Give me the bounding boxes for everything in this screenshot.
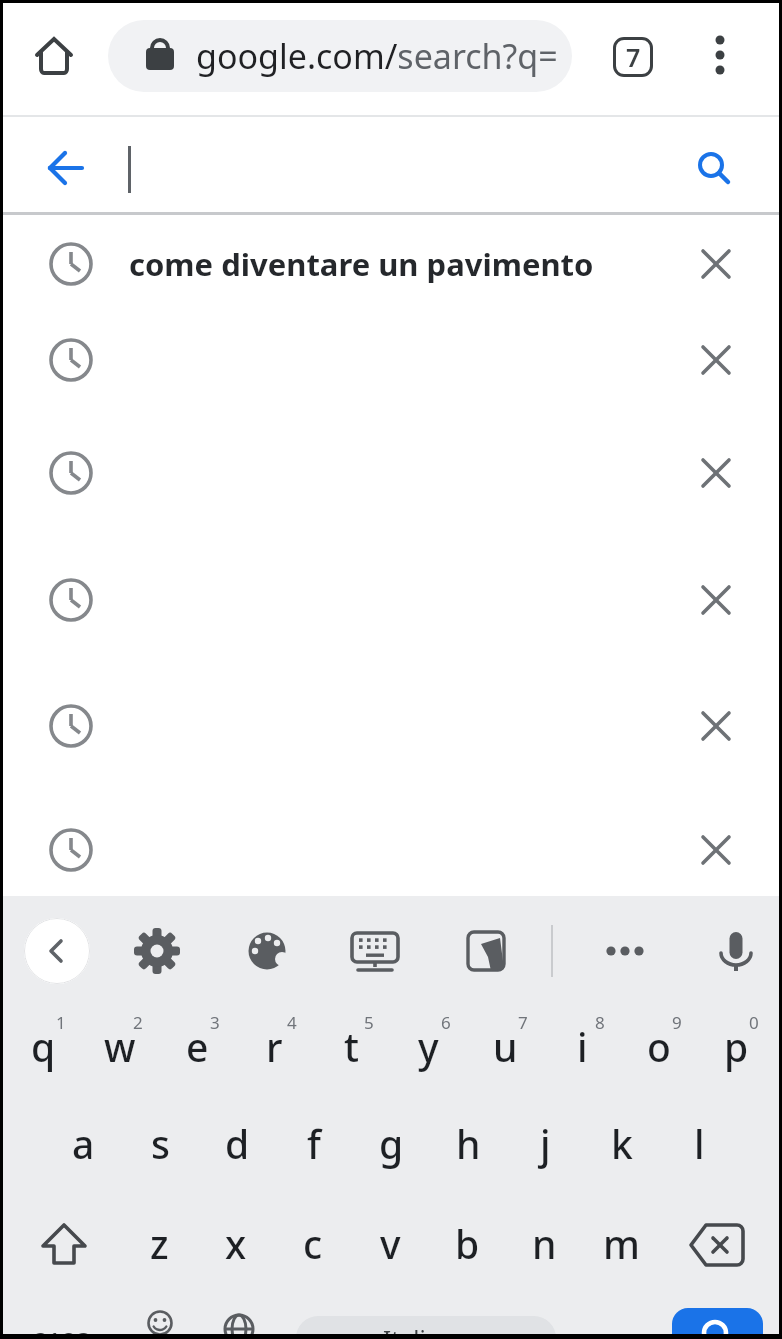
button[interactable]: o	[620, 1010, 698, 1082]
button[interactable]	[347, 923, 403, 979]
staticText: o	[647, 1020, 671, 1073]
button[interactable]: ?123	[20, 1310, 106, 1339]
button[interactable]: w	[81, 1010, 159, 1082]
button[interactable]: x	[197, 1207, 275, 1279]
button[interactable]: u	[466, 1010, 544, 1082]
button[interactable]: l	[660, 1107, 738, 1179]
button[interactable]	[695, 30, 745, 80]
staticText: 3	[210, 1011, 220, 1034]
button[interactable]: y	[389, 1010, 467, 1082]
staticText: j	[540, 1117, 551, 1170]
button[interactable]: s	[121, 1107, 199, 1179]
button[interactable]	[677, 1207, 757, 1283]
staticText: u	[493, 1020, 518, 1073]
button[interactable]	[212, 1300, 266, 1339]
staticText: z	[150, 1217, 169, 1270]
button[interactable]: v	[351, 1207, 429, 1279]
button[interactable]: p	[697, 1010, 775, 1082]
staticText: ?123	[35, 1323, 92, 1339]
button[interactable]	[0, 425, 782, 521]
button[interactable]	[597, 923, 653, 979]
staticText: b	[455, 1217, 480, 1270]
staticText: Italiano	[383, 1322, 469, 1339]
button[interactable]: t	[312, 1010, 390, 1082]
button[interactable]	[708, 923, 764, 979]
staticText: t	[344, 1020, 359, 1073]
staticText: 5	[364, 1011, 374, 1034]
button[interactable]: z	[120, 1207, 198, 1279]
staticText: p	[724, 1020, 749, 1073]
button[interactable]	[239, 923, 295, 979]
button[interactable]: b	[428, 1207, 506, 1279]
button[interactable]: m	[582, 1207, 660, 1279]
button[interactable]	[688, 445, 744, 501]
button[interactable]: d	[198, 1107, 276, 1179]
staticText: l	[694, 1117, 705, 1170]
button[interactable]	[26, 28, 82, 84]
staticText: v	[380, 1217, 401, 1270]
button[interactable]: c	[274, 1207, 352, 1279]
staticText: 7	[626, 40, 641, 74]
button[interactable]	[25, 1207, 103, 1283]
button[interactable]: i	[543, 1010, 621, 1082]
button[interactable]	[0, 312, 782, 408]
staticText: 4	[287, 1011, 297, 1034]
button[interactable]	[672, 1308, 763, 1339]
staticText: m	[603, 1217, 640, 1270]
button[interactable]: Italiano	[296, 1316, 556, 1339]
button[interactable]: n	[505, 1207, 583, 1279]
button[interactable]	[687, 141, 741, 195]
staticText: 2	[133, 1011, 143, 1034]
button[interactable]: f	[275, 1107, 353, 1179]
staticText: 6	[441, 1011, 451, 1034]
button[interactable]	[136, 1298, 184, 1339]
staticText: n	[532, 1217, 557, 1270]
button[interactable]	[24, 918, 90, 984]
staticText: g	[379, 1117, 404, 1170]
staticText: y	[418, 1020, 439, 1073]
staticText: q	[31, 1020, 56, 1073]
staticText: e	[186, 1020, 209, 1073]
staticText: c	[303, 1217, 323, 1270]
staticText: d	[225, 1117, 250, 1170]
button[interactable]	[688, 572, 744, 628]
staticText: i	[577, 1020, 588, 1073]
button[interactable]	[688, 236, 744, 292]
button[interactable]	[688, 698, 744, 754]
staticText: 7	[518, 1011, 528, 1034]
button[interactable]	[458, 923, 514, 979]
button[interactable]: come diventare un pavimento	[0, 216, 782, 312]
staticText: h	[456, 1117, 481, 1170]
staticText: google.com/search?q=	[196, 33, 558, 79]
button[interactable]: g	[352, 1107, 430, 1179]
button[interactable]: google.com/search?q=	[108, 20, 572, 92]
button[interactable]	[0, 802, 782, 898]
staticText: f	[307, 1117, 321, 1170]
button[interactable]: k	[583, 1107, 661, 1179]
button[interactable]	[688, 822, 744, 878]
button[interactable]	[0, 552, 782, 648]
staticText: 8	[595, 1011, 605, 1034]
staticText: 9	[672, 1011, 682, 1034]
staticText: come diventare un pavimento	[129, 243, 594, 285]
button[interactable]	[38, 140, 94, 196]
button[interactable]	[129, 923, 185, 979]
button[interactable]: h	[429, 1107, 507, 1179]
staticText: k	[611, 1117, 633, 1170]
staticText: a	[72, 1117, 95, 1170]
button[interactable]: r	[235, 1010, 313, 1082]
button[interactable]: q	[4, 1010, 82, 1082]
staticText: r	[266, 1020, 283, 1073]
staticText: s	[151, 1117, 170, 1170]
staticText: 0	[749, 1011, 759, 1034]
staticText: w	[104, 1020, 136, 1073]
button[interactable]: e	[158, 1010, 236, 1082]
staticText: x	[225, 1217, 247, 1270]
button[interactable]	[0, 678, 782, 774]
button[interactable]: 7	[608, 32, 658, 82]
button[interactable]: j	[506, 1107, 584, 1179]
button[interactable]: a	[44, 1107, 122, 1179]
button[interactable]	[688, 332, 744, 388]
staticText: 1	[56, 1011, 66, 1034]
